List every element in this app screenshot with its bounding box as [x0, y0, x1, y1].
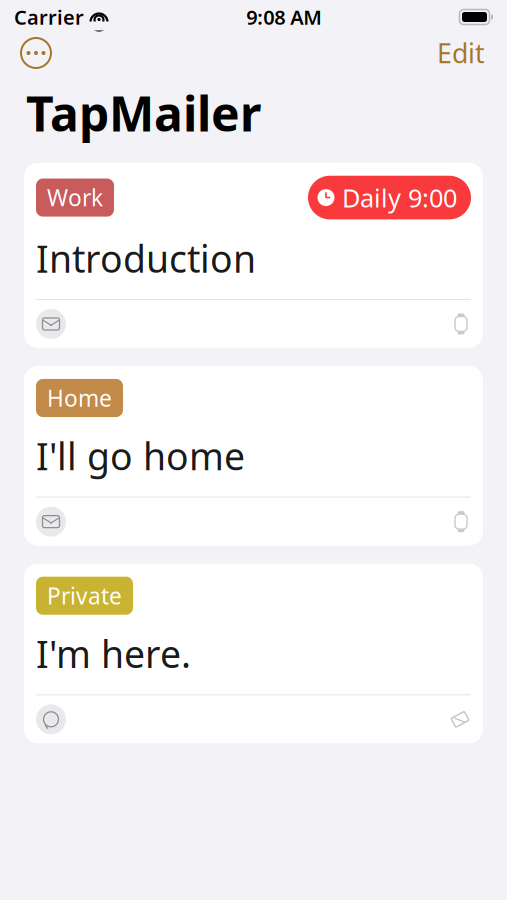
button[interactable]: Edit	[429, 31, 493, 75]
staticText: Home	[47, 383, 112, 413]
button[interactable]: Private	[24, 564, 483, 743]
staticText: I'll go home	[36, 431, 245, 481]
staticText: Introduction	[36, 233, 256, 283]
button[interactable]: Work	[24, 163, 483, 348]
staticText: TapMailer	[26, 81, 261, 145]
staticText: Carrier	[14, 4, 84, 30]
button[interactable]: More options	[14, 31, 58, 75]
staticText: Edit	[437, 35, 485, 71]
staticText: I'm here.	[36, 629, 191, 678]
staticText: Daily 9:00	[342, 181, 457, 214]
staticText: Private	[47, 581, 122, 611]
staticText: 9:08 AM	[246, 4, 322, 30]
button[interactable]: Home	[24, 366, 483, 546]
staticText: Work	[47, 182, 103, 213]
